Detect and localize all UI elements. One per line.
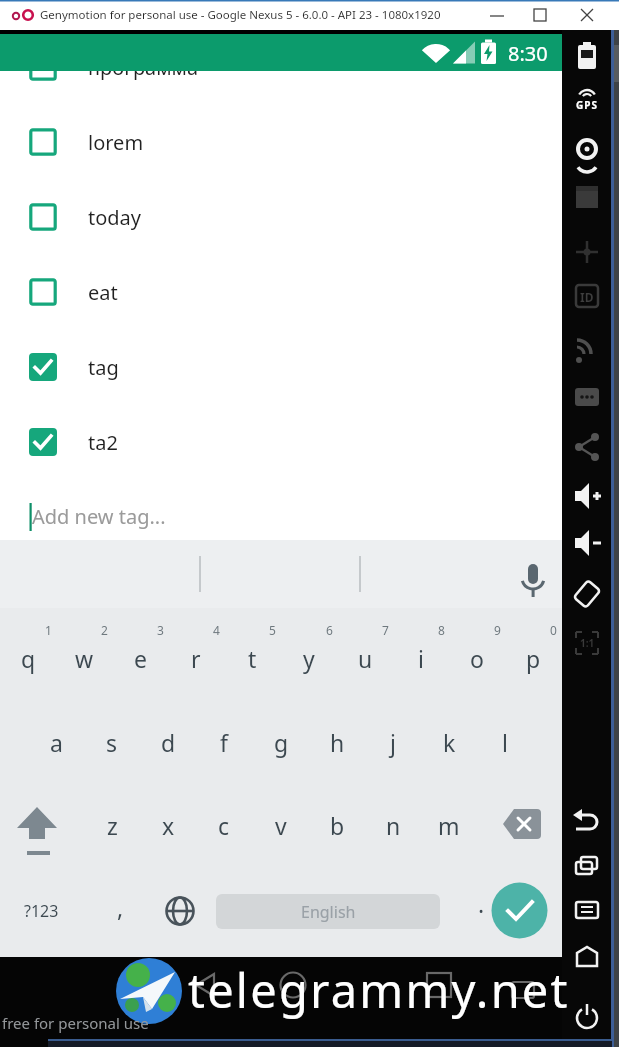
button[interactable]: o (449, 632, 505, 684)
staticText: telegrammy.net (188, 958, 570, 1022)
staticText: o (470, 643, 484, 674)
button[interactable]: x (140, 799, 196, 851)
button[interactable] (495, 799, 555, 851)
button[interactable] (415, 962, 463, 1008)
button[interactable]: eat (0, 255, 562, 329)
staticText: 6 (326, 622, 333, 638)
button[interactable]: v (253, 799, 309, 851)
button[interactable]: u (337, 632, 393, 684)
staticText: eat (88, 279, 118, 306)
button[interactable] (483, 0, 511, 30)
staticText: g (274, 727, 289, 758)
staticText: 7 (382, 622, 389, 638)
staticText: t (248, 643, 257, 674)
button[interactable] (565, 935, 609, 979)
button[interactable] (526, 0, 554, 30)
staticText: c (218, 810, 230, 841)
staticText: English (301, 901, 356, 923)
button[interactable]: c (196, 799, 252, 851)
button[interactable]: English (216, 894, 440, 929)
staticText: r (191, 643, 201, 674)
staticText: 1 (45, 622, 52, 638)
button[interactable]: b (309, 799, 365, 851)
staticText: 8 (438, 622, 445, 638)
staticText: 0 (550, 622, 557, 638)
button[interactable] (565, 177, 609, 221)
button[interactable]: g (253, 716, 309, 768)
staticText: i (418, 643, 424, 674)
button[interactable] (573, 0, 601, 30)
staticText: 1:1 (580, 636, 595, 650)
button[interactable]: tag (0, 330, 562, 404)
staticText: программа (88, 54, 199, 81)
button[interactable]: z (84, 799, 140, 851)
staticText: j (390, 727, 396, 758)
button[interactable] (565, 621, 609, 665)
button[interactable] (514, 548, 552, 600)
button[interactable] (269, 962, 317, 1008)
button[interactable]: j (365, 716, 421, 768)
button[interactable]: s (84, 716, 140, 768)
button[interactable]: Add new tag... (0, 492, 562, 540)
button[interactable]: y (281, 632, 337, 684)
button[interactable]: d (140, 716, 196, 768)
button[interactable]: программа (0, 30, 562, 104)
button[interactable]: t (224, 632, 280, 684)
button[interactable] (565, 128, 609, 172)
staticText: 3 (157, 622, 164, 638)
button[interactable] (565, 34, 609, 78)
button[interactable]: h (309, 716, 365, 768)
button[interactable]: p (505, 632, 561, 684)
staticText: 9 (494, 622, 501, 638)
staticText: l (502, 727, 508, 758)
button[interactable] (180, 962, 228, 1008)
staticText: GPS (576, 98, 598, 112)
button[interactable]: , (92, 881, 148, 933)
staticText: h (330, 727, 345, 758)
button[interactable]: l (477, 716, 533, 768)
staticText: q (21, 643, 36, 674)
button[interactable]: q (0, 632, 56, 684)
staticText: lorem (88, 129, 144, 156)
staticText: z (107, 810, 118, 841)
button[interactable] (565, 844, 609, 888)
button[interactable] (152, 885, 208, 937)
button[interactable]: k (421, 716, 477, 768)
button[interactable] (10, 799, 66, 851)
button[interactable] (565, 376, 609, 420)
button[interactable]: m (421, 799, 477, 851)
button[interactable]: ?123 (13, 885, 69, 937)
button[interactable]: a (28, 716, 84, 768)
button[interactable] (565, 81, 609, 125)
button[interactable] (565, 274, 609, 318)
button[interactable] (565, 572, 609, 616)
button[interactable] (565, 230, 609, 274)
button[interactable]: w (56, 632, 112, 684)
button[interactable]: e (112, 632, 168, 684)
staticText: u (358, 643, 373, 674)
button[interactable] (565, 330, 609, 374)
staticText: ID (580, 289, 594, 305)
button[interactable] (491, 882, 548, 939)
staticText: m (438, 810, 460, 841)
button[interactable] (565, 996, 609, 1040)
button[interactable]: n (365, 799, 421, 851)
button[interactable] (565, 800, 609, 844)
staticText: a (50, 727, 63, 758)
staticText: s (106, 727, 118, 758)
button[interactable]: today (0, 180, 562, 254)
button[interactable]: i (393, 632, 449, 684)
staticText: , (117, 892, 124, 923)
button[interactable]: f (196, 716, 252, 768)
button[interactable] (565, 521, 609, 565)
button[interactable] (565, 474, 609, 518)
button[interactable]: lorem (0, 105, 562, 179)
button[interactable]: r (168, 632, 224, 684)
button[interactable]: ta2 (0, 405, 562, 479)
button[interactable] (565, 425, 609, 469)
staticText: free for personal use (2, 1013, 149, 1033)
button[interactable] (565, 888, 609, 932)
button[interactable]: . (453, 877, 509, 929)
staticText: ta2 (88, 429, 118, 456)
staticText: tag (88, 354, 119, 381)
